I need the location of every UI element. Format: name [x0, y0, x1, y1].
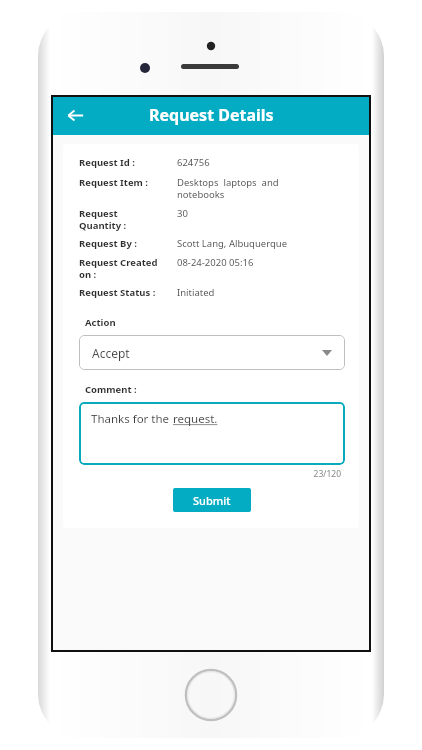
staticText: Request Status : — [79, 286, 177, 299]
staticText: Comment : — [85, 383, 137, 396]
staticText: Action — [85, 316, 116, 329]
button[interactable]: Thanks for the — [79, 402, 345, 465]
staticText: Desktops laptops and notebooks — [177, 176, 345, 201]
staticText: Request Details — [149, 104, 274, 126]
staticText: 30 — [177, 207, 345, 220]
staticText: Scott Lang, Albuquerque — [177, 237, 345, 250]
staticText: Request Item : — [79, 176, 177, 189]
button[interactable]: Accept — [79, 335, 345, 370]
staticText: Accept — [92, 345, 130, 361]
staticText: Request Id : — [79, 156, 177, 169]
staticText: Thanks for the — [91, 411, 173, 427]
staticText: Request By : — [79, 237, 177, 250]
staticText: Initiated — [177, 286, 345, 299]
staticText: Request Quantity : — [79, 207, 177, 232]
staticText: Request Created on : — [79, 256, 177, 281]
staticText: Submit — [193, 493, 231, 508]
staticText: 624756 — [177, 156, 345, 169]
staticText: 23/120 — [79, 468, 341, 480]
staticText: 08-24-2020 05:16 — [177, 256, 345, 269]
button[interactable]: Back — [59, 99, 91, 131]
button[interactable]: Submit — [173, 488, 251, 512]
staticText: request. — [173, 411, 218, 427]
